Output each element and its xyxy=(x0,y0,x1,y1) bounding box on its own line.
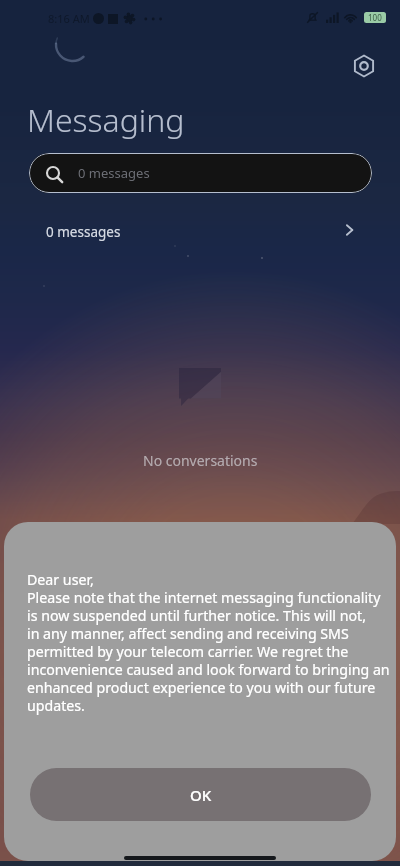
staticText: 0 messages xyxy=(78,164,150,182)
button[interactable]: Settings xyxy=(349,51,379,81)
button[interactable]: OK xyxy=(30,768,371,821)
staticText: Messaging xyxy=(27,98,185,142)
staticText: No conversations xyxy=(143,451,258,470)
staticText: 100 xyxy=(368,12,382,23)
button[interactable]: 0 messages xyxy=(0,193,400,247)
button[interactable]: 0 messages xyxy=(29,153,372,193)
staticText: 0 messages xyxy=(46,223,121,241)
staticText: Dear user, Please note that the internet… xyxy=(27,570,390,715)
staticText: 8:16 AM xyxy=(48,11,90,26)
staticText: OK xyxy=(190,785,212,805)
